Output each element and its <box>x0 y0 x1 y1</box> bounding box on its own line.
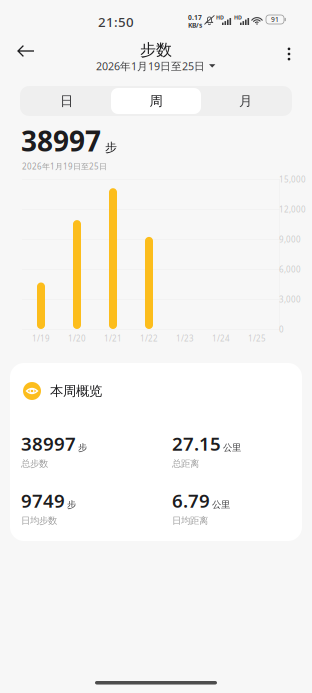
staticText: 91 <box>271 15 279 24</box>
staticText: 日均距离 <box>172 515 208 526</box>
staticText: 步 <box>105 140 117 155</box>
staticText: 12,000 <box>279 204 306 215</box>
staticText: 周 <box>149 93 162 109</box>
button[interactable]: 周 <box>111 88 201 114</box>
staticText: 步 <box>67 499 76 510</box>
staticText: 0.17 <box>188 13 202 22</box>
staticText: 1/21 <box>104 333 122 344</box>
staticText: 6.79 <box>172 488 210 513</box>
staticText: 0 <box>279 324 284 335</box>
staticText: 步数 <box>140 40 172 60</box>
staticText: 2026年1月19日至25日 <box>22 161 107 172</box>
button[interactable]: More options <box>277 40 301 68</box>
staticText: 日均步数 <box>21 515 57 526</box>
staticText: 1/24 <box>212 333 230 344</box>
button[interactable]: 2026年1月19日至25日 <box>96 59 216 73</box>
staticText: 27.15 <box>172 431 221 456</box>
staticText: 1/23 <box>176 333 194 344</box>
staticText: 15,000 <box>279 174 306 185</box>
staticText: 1/22 <box>140 333 158 344</box>
staticText: 9,000 <box>279 234 301 245</box>
staticText: 9749 <box>21 488 65 513</box>
staticText: 21:50 <box>98 13 134 31</box>
staticText: 38997 <box>21 431 76 456</box>
staticText: HD <box>216 14 224 21</box>
staticText: 38997 <box>21 122 101 159</box>
staticText: 3,000 <box>279 294 301 305</box>
staticText: 1/19 <box>32 333 50 344</box>
staticText: 总步数 <box>21 458 48 469</box>
staticText: 公里 <box>212 499 230 510</box>
button[interactable]: Back <box>12 37 40 65</box>
staticText: 1/20 <box>68 333 86 344</box>
staticText: 日 <box>60 93 73 109</box>
staticText: 月 <box>239 93 252 109</box>
button[interactable]: 日 <box>22 88 111 114</box>
staticText: 本周概览 <box>50 383 102 399</box>
staticText: 1/25 <box>248 333 266 344</box>
button[interactable]: 月 <box>201 88 290 114</box>
staticText: 2026年1月19日至25日 <box>96 59 205 73</box>
staticText: 公里 <box>223 442 241 453</box>
staticText: HD <box>234 14 242 21</box>
staticText: 总距离 <box>172 458 199 469</box>
staticText: 步 <box>78 442 87 453</box>
staticText: KB/s <box>188 21 202 30</box>
staticText: 6,000 <box>279 264 301 275</box>
